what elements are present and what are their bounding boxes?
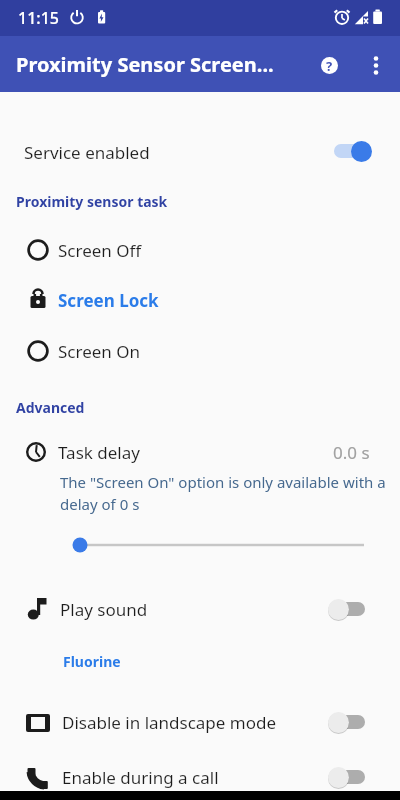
staticText: Task delay — [58, 441, 140, 464]
staticText: 0.0 s — [333, 441, 370, 464]
staticText: Screen On — [58, 340, 141, 363]
staticText: Enable during a call — [62, 766, 219, 789]
staticText: 11:15 — [18, 7, 59, 29]
staticText: ? — [326, 57, 333, 74]
staticText: Fluorine — [63, 652, 121, 671]
staticText: Service enabled — [24, 141, 150, 164]
staticText: Advanced — [16, 398, 85, 417]
staticText: Play sound — [60, 598, 148, 621]
staticText: Screen Lock — [58, 289, 159, 312]
staticText: Screen Off — [58, 239, 142, 262]
staticText: Proximity sensor task — [16, 192, 168, 211]
staticText: Proximity Sensor Screen... — [16, 51, 274, 78]
staticText: Disable in landscape mode — [62, 711, 277, 734]
staticText: The "Screen On" option is only available… — [60, 472, 386, 515]
